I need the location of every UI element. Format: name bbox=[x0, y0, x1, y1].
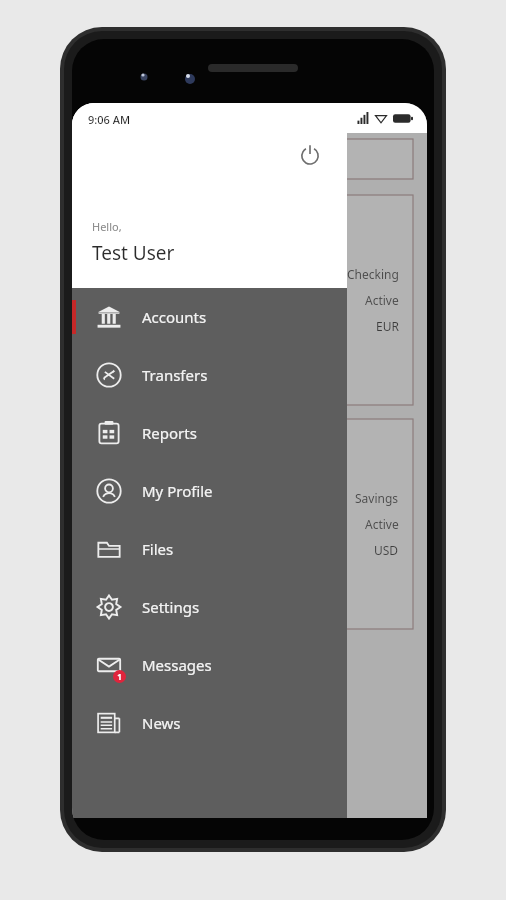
button[interactable]: Files bbox=[72, 520, 347, 578]
staticText: USD bbox=[374, 542, 399, 558]
staticText: News bbox=[142, 713, 181, 733]
button[interactable]: Settings bbox=[72, 578, 347, 636]
staticText: 9:06 AM bbox=[88, 111, 131, 126]
staticText: Reports bbox=[142, 423, 197, 443]
staticText: Settings bbox=[142, 597, 200, 617]
button[interactable]: Reports bbox=[72, 404, 347, 462]
staticText: EUR bbox=[376, 318, 399, 334]
staticText: Active bbox=[365, 292, 399, 308]
staticText: Checking bbox=[347, 266, 399, 282]
staticText: Test User bbox=[92, 240, 175, 266]
button[interactable]: News bbox=[72, 694, 347, 752]
staticText: Accounts bbox=[142, 307, 207, 327]
button[interactable]: Accounts bbox=[72, 288, 347, 346]
button[interactable]: My Profile bbox=[72, 462, 347, 520]
staticText: 9:06 AM bbox=[88, 112, 131, 127]
staticText: Files bbox=[142, 539, 174, 559]
button[interactable]: 1 bbox=[72, 636, 347, 694]
button[interactable]: Transfers bbox=[72, 346, 347, 404]
staticText: 1 bbox=[117, 671, 122, 682]
staticText: My Profile bbox=[142, 481, 213, 501]
staticText: Active bbox=[365, 516, 399, 532]
staticText: Hello, bbox=[92, 219, 122, 234]
staticText: Messages bbox=[142, 655, 212, 675]
staticText: Savings bbox=[355, 490, 399, 506]
button[interactable]: Log out bbox=[293, 138, 327, 172]
staticText: Transfers bbox=[142, 365, 208, 385]
